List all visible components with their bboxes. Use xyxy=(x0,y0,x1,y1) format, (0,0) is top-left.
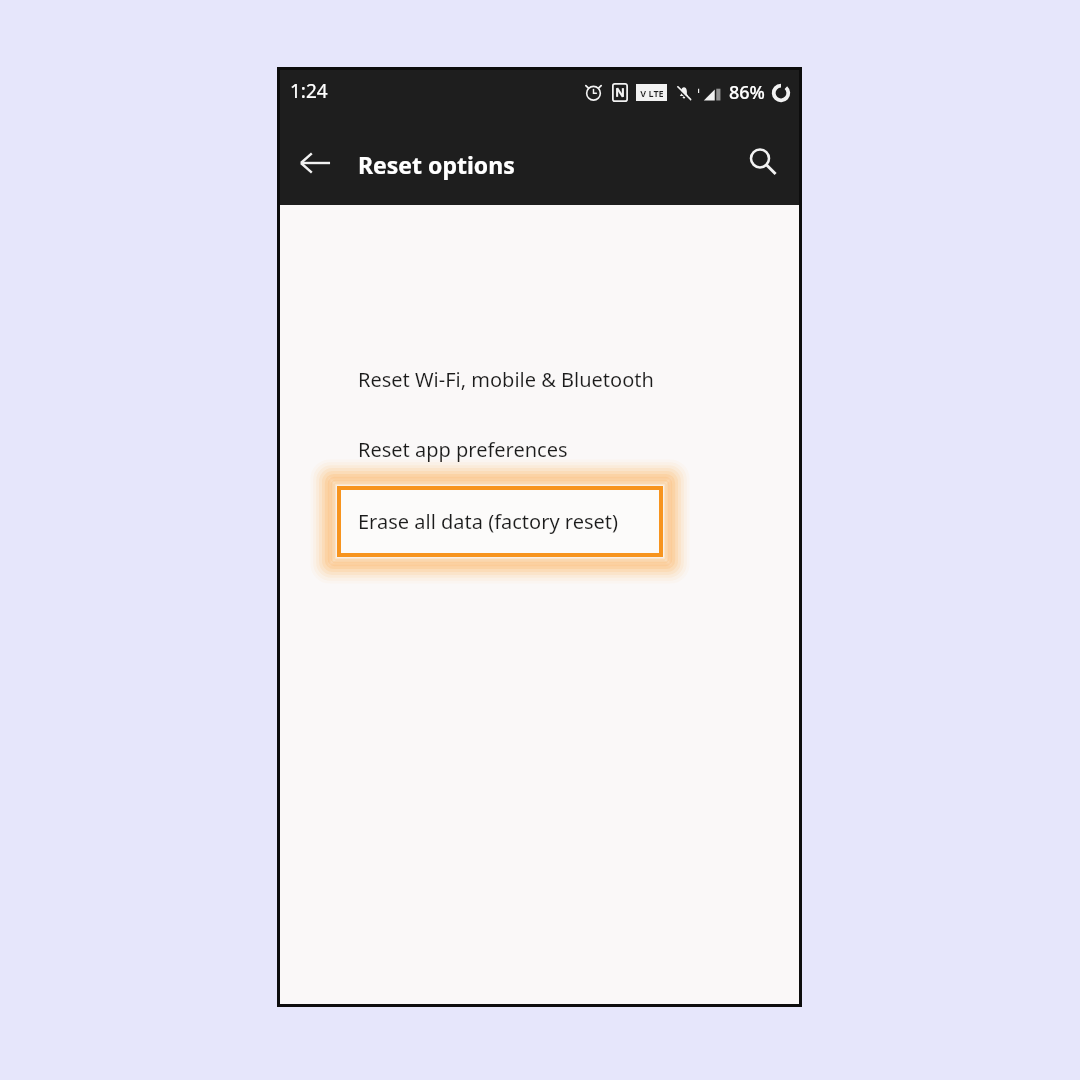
button[interactable]: Back xyxy=(291,139,339,187)
button[interactable]: Reset Wi-Fi, mobile & Bluetooth xyxy=(280,351,799,407)
staticText: 86% xyxy=(729,80,765,105)
staticText: Reset Wi-Fi, mobile & Bluetooth xyxy=(358,366,654,393)
staticText: V LTE xyxy=(640,87,664,99)
staticText: Reset options xyxy=(358,149,515,180)
staticText: 1:24 xyxy=(290,78,328,104)
staticText: Reset app preferences xyxy=(358,436,568,463)
staticText: Erase all data (factory reset) xyxy=(358,508,619,535)
button[interactable]: Erase all data (factory reset) xyxy=(341,490,659,553)
button[interactable]: Search xyxy=(739,138,787,186)
button[interactable]: Reset app preferences xyxy=(280,421,799,477)
